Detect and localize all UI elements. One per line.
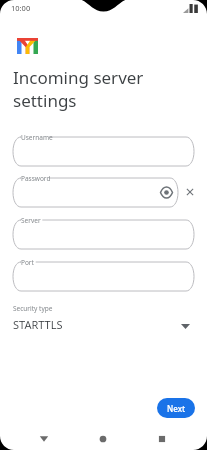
button[interactable]: Recent apps <box>155 432 169 446</box>
button[interactable]: Back <box>37 432 51 446</box>
button[interactable]: Clear password <box>184 186 196 198</box>
staticText: Server <box>21 216 41 225</box>
button[interactable]: Home <box>96 432 110 446</box>
staticText: 10:00 <box>11 3 31 13</box>
staticText: Port <box>21 258 34 267</box>
button[interactable]: Server <box>13 220 194 249</box>
button[interactable]: Password <box>13 178 178 207</box>
button[interactable]: Show password <box>159 185 174 200</box>
staticText: Username <box>21 133 53 142</box>
staticText: Security type <box>13 304 53 313</box>
staticText: Incoming server <box>13 66 144 89</box>
staticText: Password <box>21 174 51 183</box>
button[interactable]: Username <box>13 137 194 166</box>
button[interactable]: Security type <box>0 302 207 340</box>
staticText: Next <box>167 403 186 414</box>
button[interactable]: Port <box>13 262 194 291</box>
staticText: settings <box>13 89 77 112</box>
staticText: STARTTLS <box>13 317 63 332</box>
button[interactable]: Next <box>157 398 195 418</box>
